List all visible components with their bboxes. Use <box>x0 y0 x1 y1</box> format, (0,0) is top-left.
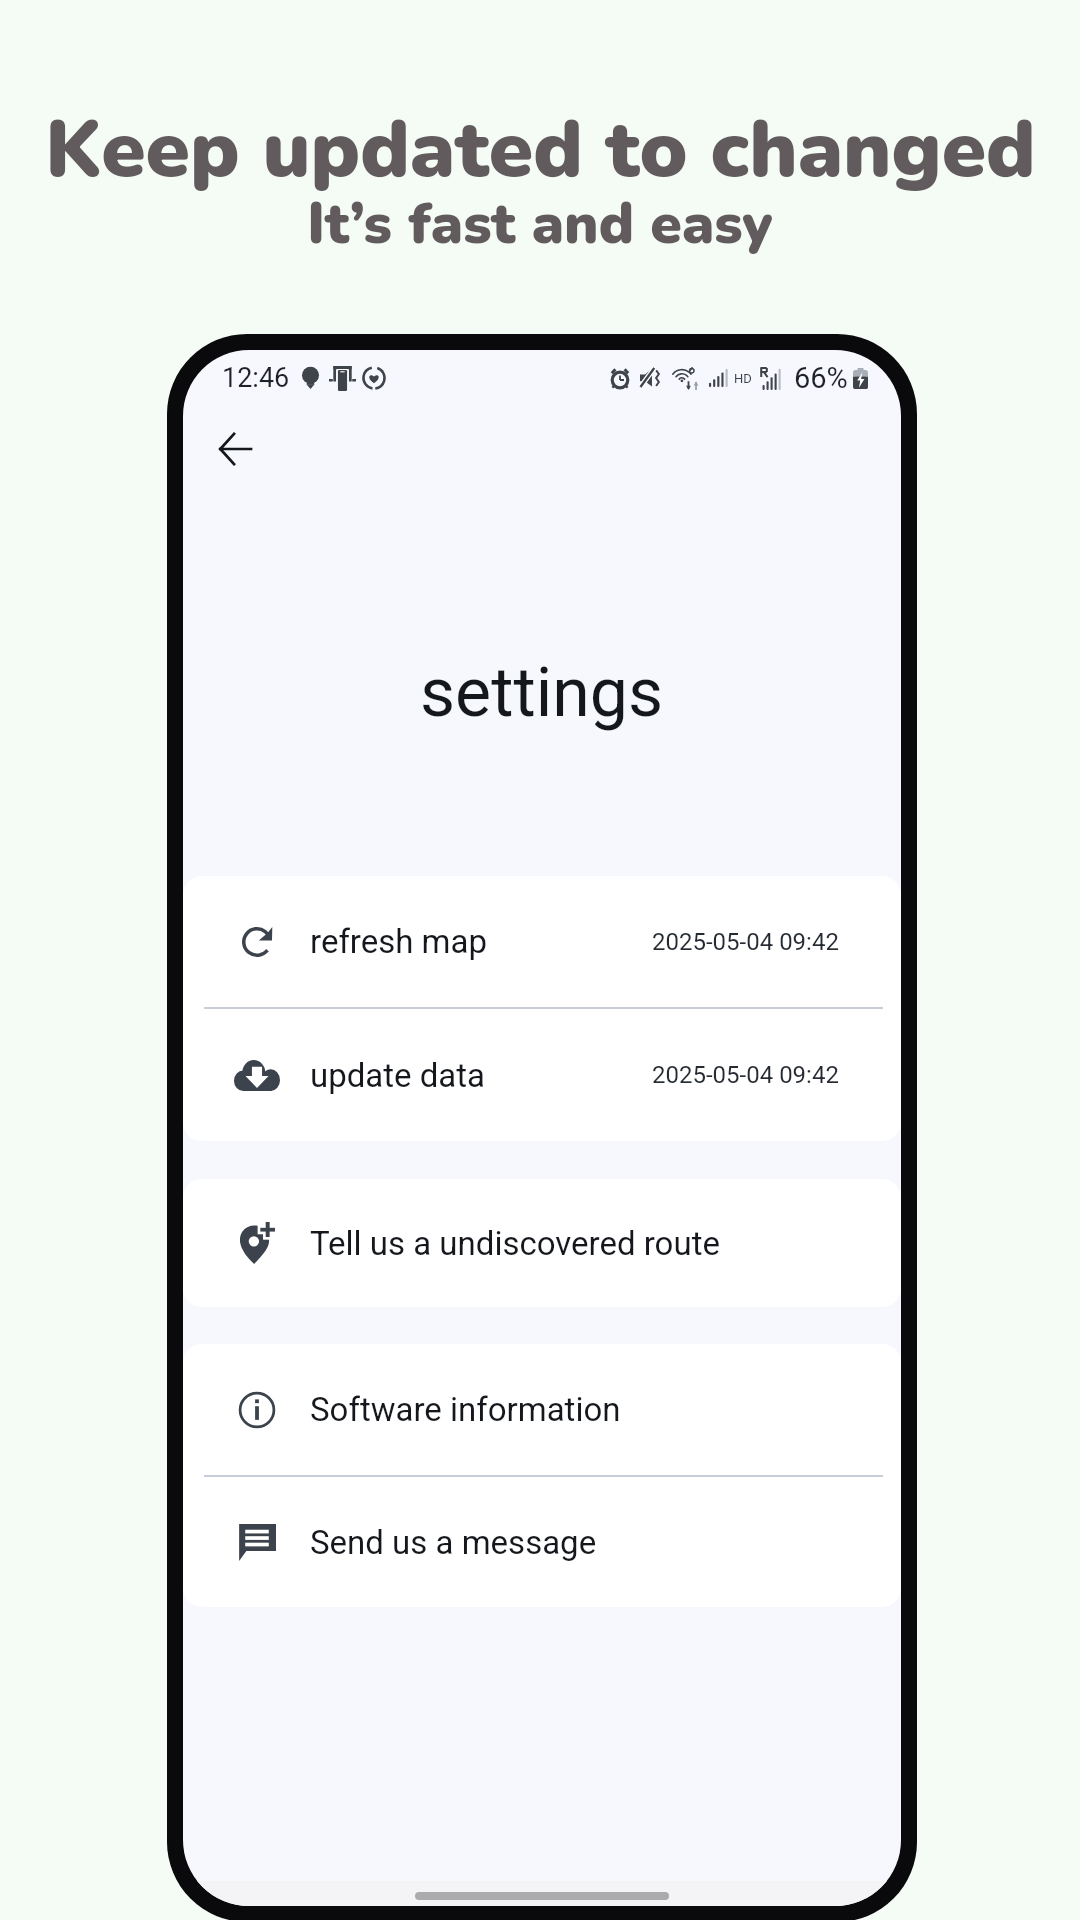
staticText: 12:46 <box>222 362 290 394</box>
staticText: Send us a message <box>310 1523 597 1562</box>
staticText: 2025-05-04 09:42 <box>652 1061 839 1089</box>
staticText: settings <box>420 653 664 733</box>
button[interactable]: Send us a message <box>183 1477 901 1607</box>
button[interactable]: update data <box>183 1009 901 1141</box>
button[interactable]: refresh map <box>183 876 901 1007</box>
staticText: It’s fast and easy <box>307 185 773 263</box>
staticText: Keep updated to changed <box>45 95 1036 204</box>
button[interactable]: Tell us a undiscovered route <box>183 1179 901 1307</box>
staticText: Tell us a undiscovered route <box>310 1224 720 1263</box>
staticText: refresh map <box>310 922 488 961</box>
button[interactable]: Software information <box>183 1344 901 1475</box>
button[interactable]: Back <box>199 413 271 485</box>
staticText: HD <box>734 371 752 386</box>
staticText: 2025-05-04 09:42 <box>652 928 839 956</box>
staticText: 66% <box>794 361 848 395</box>
staticText: Software information <box>310 1390 621 1429</box>
staticText: update data <box>310 1056 486 1095</box>
